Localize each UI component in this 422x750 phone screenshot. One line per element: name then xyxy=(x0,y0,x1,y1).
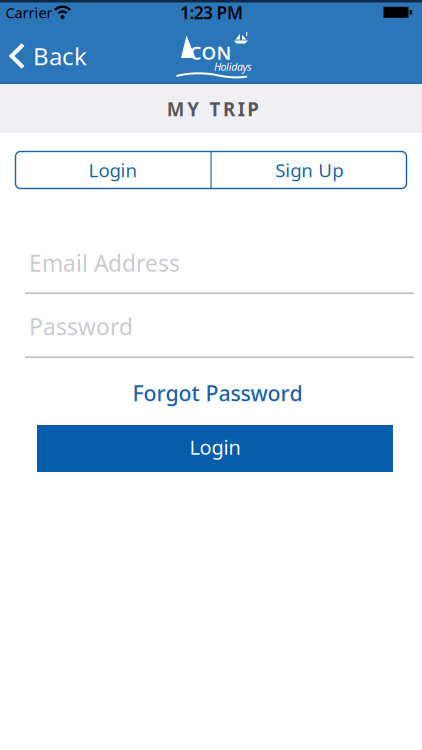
staticText: Login xyxy=(88,158,137,182)
staticText: Password xyxy=(29,311,133,342)
button[interactable]: Sign Up xyxy=(212,151,406,188)
staticText: Holidays xyxy=(214,59,252,74)
staticText: Carrier xyxy=(5,3,52,22)
staticText: Sign Up xyxy=(275,158,343,182)
button[interactable]: Password xyxy=(25,317,414,358)
button[interactable]: Back xyxy=(9,40,87,72)
staticText: Email Address xyxy=(29,248,180,278)
button[interactable]: Email Address xyxy=(25,254,414,294)
button[interactable]: Login xyxy=(15,151,210,188)
staticText: Login xyxy=(189,434,240,460)
staticText: Forgot Password xyxy=(132,379,302,407)
staticText: 1:23 PM xyxy=(180,1,243,24)
staticText: CON xyxy=(189,40,231,65)
button[interactable]: Forgot Password xyxy=(132,379,302,407)
staticText: Back xyxy=(33,40,87,72)
button[interactable]: Login xyxy=(37,425,393,472)
staticText: MY TRIP xyxy=(167,97,259,121)
